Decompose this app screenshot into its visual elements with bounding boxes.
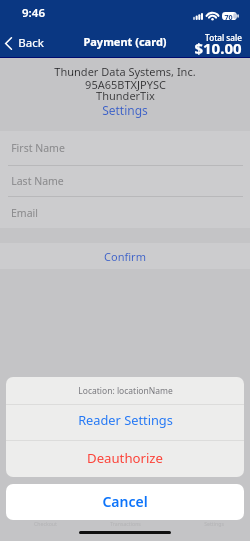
staticText: 9:46 bbox=[22, 5, 45, 21]
staticText: ThunderTix bbox=[96, 88, 155, 103]
staticText: Total sale bbox=[205, 32, 242, 43]
button[interactable]: Email bbox=[0, 197, 250, 228]
staticText: Email bbox=[11, 206, 38, 220]
staticText: 95A65BTXJPYSC bbox=[85, 77, 166, 92]
button[interactable]: First Name bbox=[0, 131, 250, 165]
staticText: Back bbox=[18, 35, 44, 51]
staticText: Checkout bbox=[34, 520, 57, 527]
staticText: Location: locationName bbox=[78, 385, 173, 397]
staticText: Deauthorize bbox=[87, 449, 163, 467]
staticText: Payment (card) bbox=[83, 34, 167, 49]
button[interactable]: Last Name bbox=[0, 166, 250, 196]
button[interactable]: Settings bbox=[92, 102, 158, 118]
staticText: First Name bbox=[11, 141, 65, 155]
staticText: Last Name bbox=[11, 174, 64, 188]
staticText: $10.00 bbox=[194, 38, 242, 58]
button[interactable]: Back bbox=[0, 29, 52, 55]
staticText: Reader Settings bbox=[78, 411, 173, 428]
staticText: Settings bbox=[204, 520, 224, 527]
staticText: Settings bbox=[102, 102, 148, 118]
button[interactable]: Deauthorize bbox=[6, 441, 244, 477]
button[interactable]: Reader Settings bbox=[6, 405, 244, 440]
staticText: Confirm bbox=[104, 249, 146, 264]
button[interactable]: Cancel bbox=[6, 484, 244, 520]
staticText: 70 bbox=[224, 12, 233, 20]
staticText: Transactions bbox=[110, 520, 141, 527]
button[interactable]: Confirm bbox=[0, 243, 250, 269]
staticText: Thunder Data Systems, Inc. bbox=[54, 64, 196, 79]
staticText: Cancel bbox=[102, 492, 148, 511]
